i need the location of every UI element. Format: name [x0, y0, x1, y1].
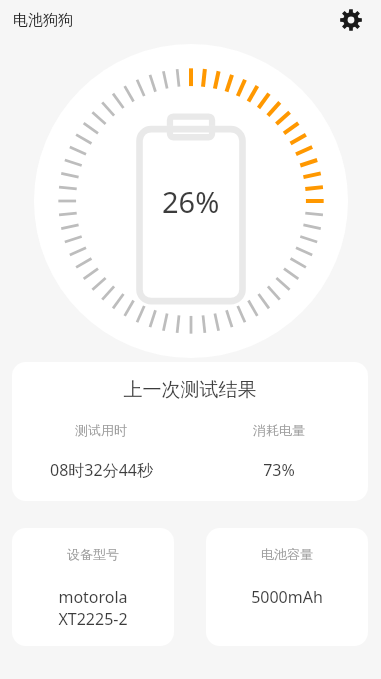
staticText: 电池狗狗 — [13, 11, 73, 30]
staticText: 测试用时 — [75, 422, 127, 438]
staticText: 5000mAh — [251, 586, 323, 608]
staticText: 设备型号 — [67, 546, 119, 562]
staticText: 上一次测试结果 — [12, 378, 368, 402]
button[interactable]: Settings — [333, 2, 369, 38]
staticText: 消耗电量 — [253, 422, 305, 438]
staticText: 电池容量 — [261, 546, 313, 562]
button[interactable]: 设备型号 — [12, 528, 174, 646]
staticText: 08时32分44秒 — [50, 459, 153, 481]
staticText: 26% — [162, 182, 220, 221]
staticText: motorola XT2225-2 — [58, 586, 128, 630]
staticText: 73% — [263, 459, 295, 481]
button[interactable]: 电池容量 — [206, 528, 368, 646]
button[interactable]: 上一次测试结果 — [12, 362, 368, 501]
